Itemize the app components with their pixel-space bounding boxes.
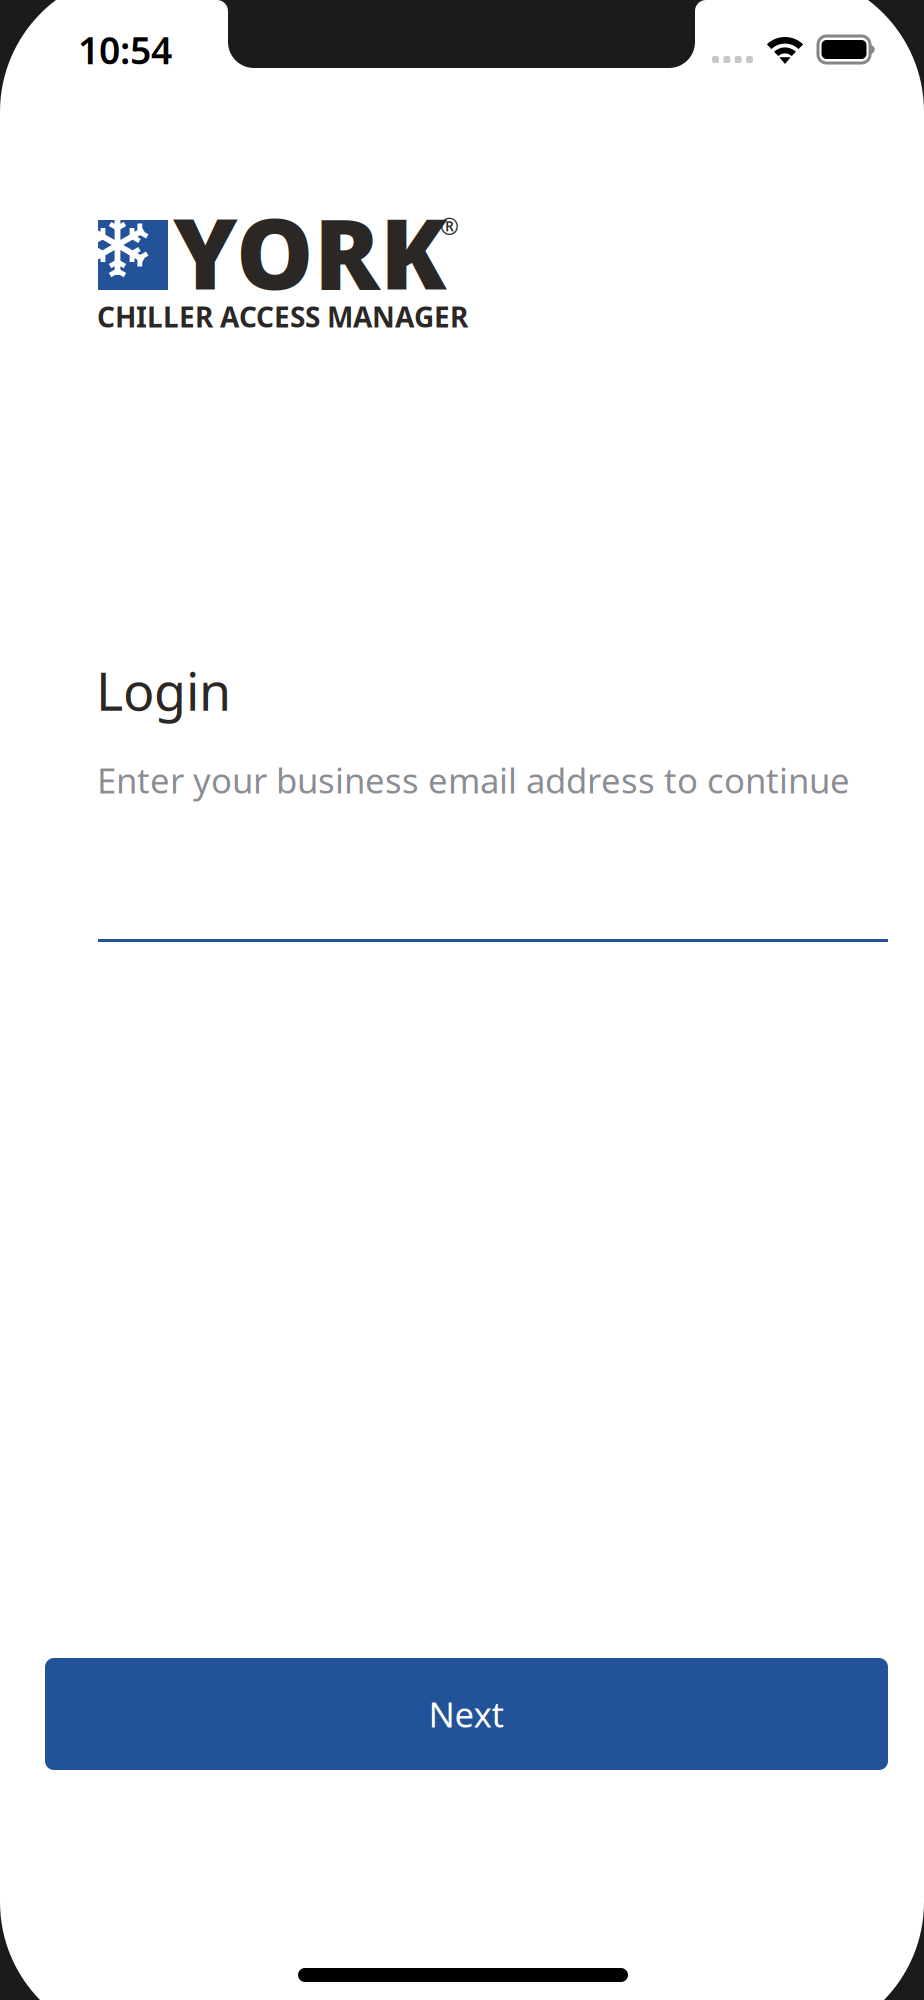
staticText: Enter your business email address to con… [97, 757, 850, 803]
button[interactable]: Business email address [98, 852, 888, 942]
staticText: 10:54 [78, 25, 172, 75]
staticText: Login [96, 656, 231, 725]
button[interactable]: Next [45, 1658, 888, 1770]
staticText: ® [440, 211, 459, 241]
staticText: CHILLER ACCESS MANAGER [97, 298, 468, 335]
staticText: YORK [173, 187, 447, 316]
staticText: Next [428, 1691, 504, 1737]
